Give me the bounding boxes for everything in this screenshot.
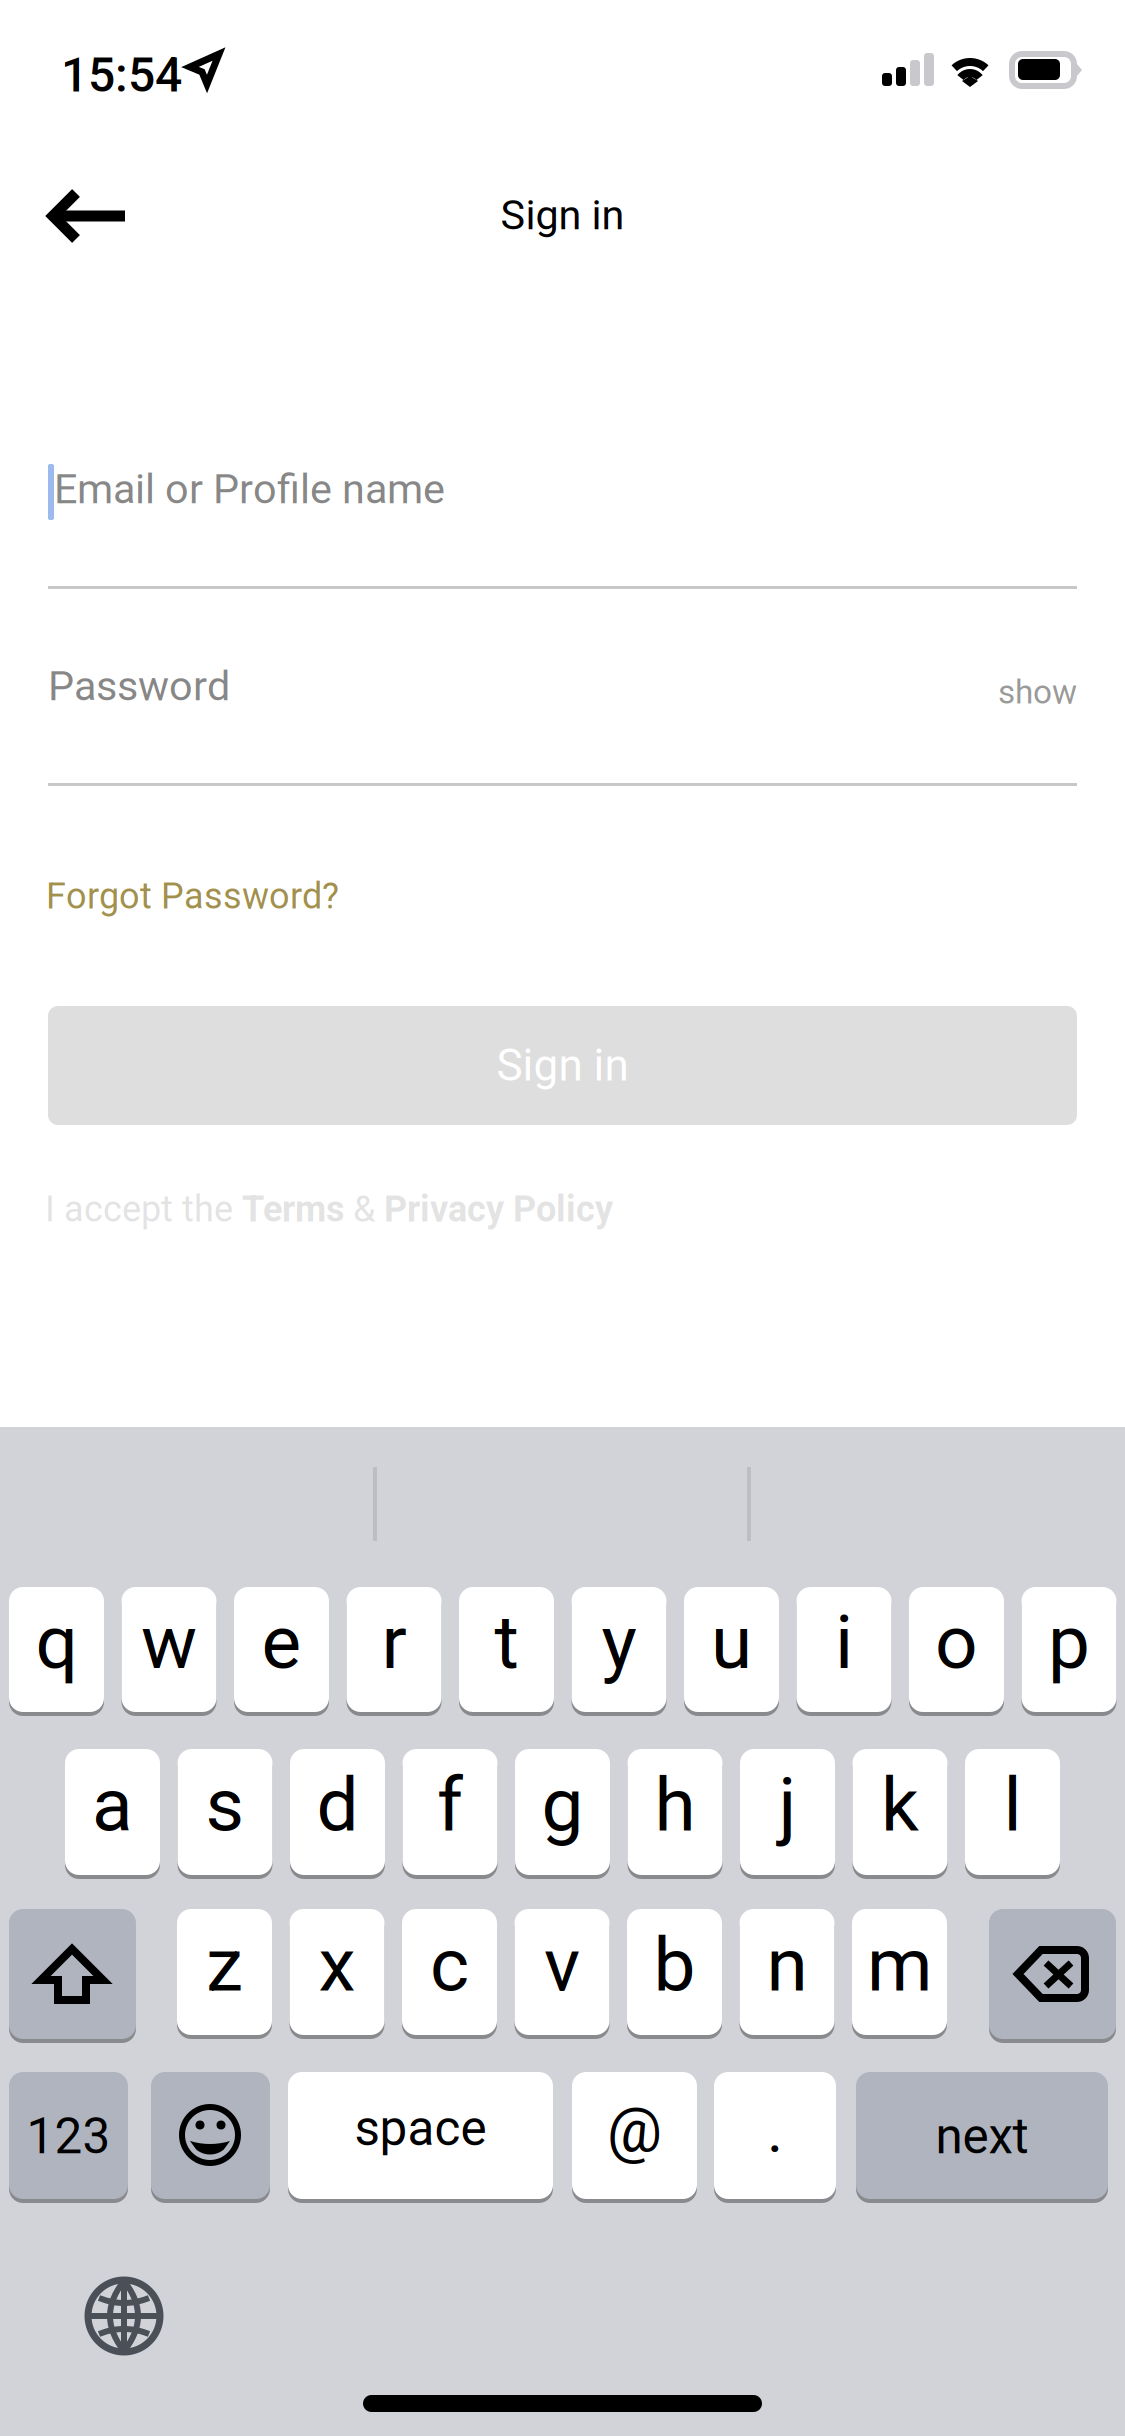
staticText: l bbox=[1003, 1761, 1021, 1849]
staticText: f bbox=[437, 1761, 463, 1849]
button[interactable]: Forgot Password? bbox=[46, 875, 339, 917]
button[interactable]: n bbox=[739, 1909, 834, 2039]
button[interactable]: Shift bbox=[9, 1909, 136, 2043]
button[interactable]: show bbox=[977, 672, 1077, 712]
staticText: Terms bbox=[242, 1188, 344, 1230]
button[interactable]: d bbox=[290, 1749, 385, 1879]
staticText: a bbox=[92, 1761, 133, 1849]
button[interactable]: . bbox=[714, 2072, 836, 2203]
button[interactable]: Sign in bbox=[48, 1006, 1077, 1125]
button[interactable]: @ bbox=[572, 2072, 697, 2203]
staticText: Privacy Policy bbox=[384, 1188, 613, 1230]
staticText: u bbox=[711, 1599, 752, 1686]
staticText: x bbox=[318, 1921, 355, 2009]
staticText: 123 bbox=[26, 2108, 110, 2165]
staticText: & bbox=[344, 1188, 384, 1230]
staticText: @ bbox=[607, 2095, 662, 2166]
staticText: Email or Profile name bbox=[54, 465, 445, 513]
staticText: 15:54 bbox=[61, 47, 182, 103]
staticText: k bbox=[881, 1761, 919, 1849]
button[interactable]: Emoji bbox=[151, 2072, 270, 2203]
button[interactable]: r bbox=[346, 1587, 441, 1716]
staticText: Forgot Password? bbox=[46, 875, 339, 917]
staticText: t bbox=[494, 1599, 518, 1686]
button[interactable]: c bbox=[402, 1909, 497, 2039]
staticText: i bbox=[835, 1599, 853, 1686]
button[interactable]: y bbox=[571, 1587, 666, 1716]
button[interactable]: f bbox=[402, 1749, 497, 1879]
staticText: g bbox=[541, 1761, 583, 1849]
staticText: I accept the bbox=[45, 1188, 242, 1230]
staticText: c bbox=[430, 1921, 469, 2009]
staticText: r bbox=[381, 1599, 406, 1686]
button[interactable]: e bbox=[234, 1587, 329, 1716]
button[interactable]: m bbox=[852, 1909, 947, 2039]
button[interactable]: k bbox=[852, 1749, 947, 1879]
staticText: y bbox=[601, 1599, 636, 1686]
staticText: Password bbox=[48, 662, 230, 710]
button[interactable]: I accept the bbox=[45, 1188, 613, 1230]
button[interactable]: b bbox=[627, 1909, 722, 2039]
staticText: e bbox=[261, 1599, 301, 1686]
staticText: h bbox=[654, 1761, 695, 1849]
button[interactable]: Delete bbox=[989, 1909, 1116, 2043]
staticText: b bbox=[653, 1921, 695, 2009]
button[interactable]: x bbox=[289, 1909, 384, 2039]
button[interactable]: 123 bbox=[9, 2072, 128, 2203]
button[interactable]: z bbox=[177, 1909, 272, 2039]
button[interactable]: space bbox=[288, 2072, 553, 2203]
staticText: n bbox=[766, 1921, 807, 2009]
button[interactable]: i bbox=[796, 1587, 891, 1716]
staticText: d bbox=[316, 1761, 358, 1849]
button[interactable]: p bbox=[1021, 1587, 1116, 1716]
button[interactable]: j bbox=[740, 1749, 835, 1879]
button[interactable]: next bbox=[856, 2072, 1108, 2203]
staticText: Sign in bbox=[496, 1040, 628, 1091]
staticText: q bbox=[35, 1599, 77, 1686]
staticText: m bbox=[867, 1921, 932, 2009]
button[interactable]: h bbox=[627, 1749, 722, 1879]
staticText: space bbox=[354, 2100, 486, 2157]
button[interactable]: Back bbox=[37, 163, 181, 293]
button[interactable]: l bbox=[965, 1749, 1060, 1879]
staticText: o bbox=[935, 1599, 978, 1686]
button[interactable]: v bbox=[514, 1909, 609, 2039]
staticText: s bbox=[205, 1761, 244, 1849]
staticText: next bbox=[935, 2108, 1028, 2165]
button[interactable]: u bbox=[684, 1587, 779, 1716]
button[interactable]: t bbox=[459, 1587, 554, 1716]
staticText: . bbox=[767, 2095, 783, 2166]
button[interactable]: a bbox=[65, 1749, 160, 1879]
button[interactable]: Switch keyboard bbox=[74, 2266, 174, 2366]
button[interactable]: s bbox=[177, 1749, 272, 1879]
button[interactable]: o bbox=[909, 1587, 1004, 1716]
staticText: j bbox=[778, 1761, 796, 1849]
staticText: w bbox=[141, 1599, 197, 1686]
staticText: v bbox=[544, 1921, 580, 2009]
staticText: Sign in bbox=[500, 191, 624, 239]
button[interactable]: w bbox=[121, 1587, 216, 1716]
button[interactable]: g bbox=[515, 1749, 610, 1879]
staticText: p bbox=[1048, 1599, 1090, 1686]
staticText: show bbox=[998, 672, 1077, 712]
button[interactable]: q bbox=[9, 1587, 104, 1716]
staticText: z bbox=[206, 1921, 243, 2009]
